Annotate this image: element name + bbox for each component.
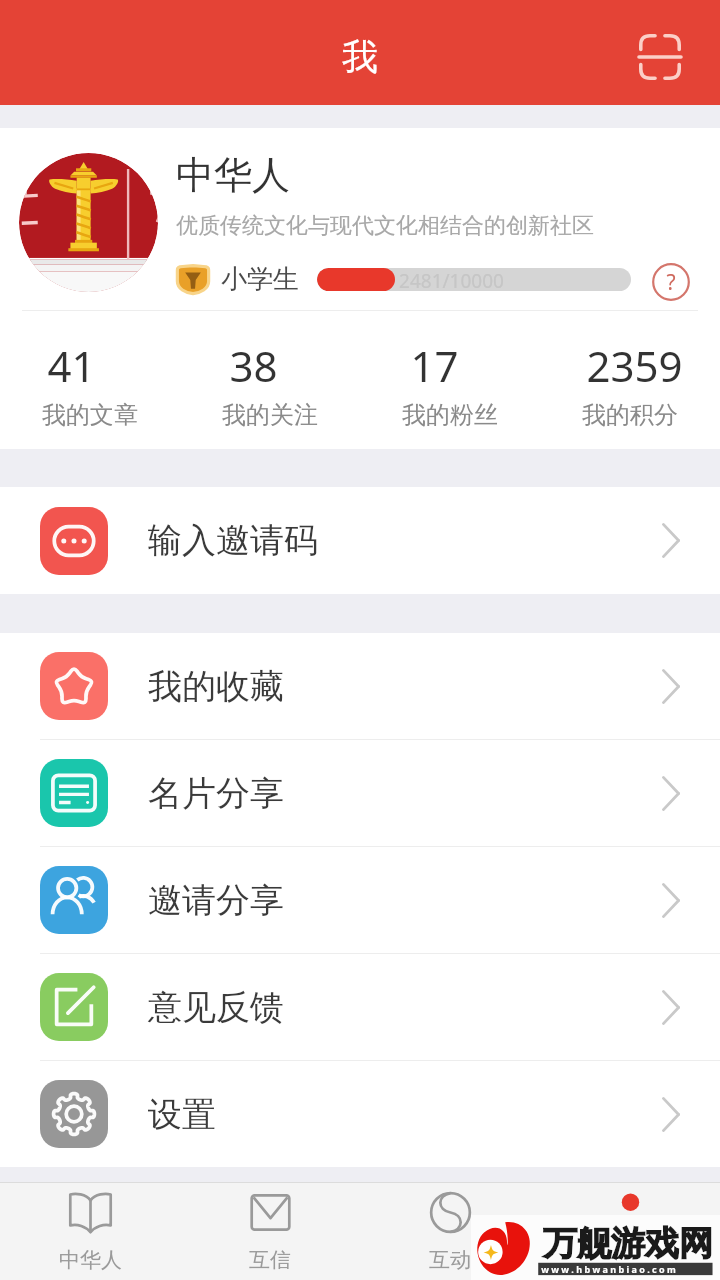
staticText: 设置	[148, 1093, 216, 1136]
staticText: 我的粉丝	[402, 400, 498, 430]
staticText: 我的积分	[582, 400, 678, 430]
staticText: 我的收藏	[148, 665, 284, 708]
staticText: 名片分享	[148, 772, 284, 815]
button[interactable]: 意见反馈	[0, 954, 720, 1060]
staticText: w w w . h b w a n b i a o . c o m	[541, 1263, 676, 1275]
staticText: 输入邀请码	[148, 519, 318, 562]
staticText: 我的文章	[42, 400, 138, 430]
button[interactable]: 输入邀请码	[0, 487, 720, 594]
staticText: 中华人	[59, 1247, 122, 1273]
staticText: 2359	[586, 337, 683, 394]
staticText: 小学生	[221, 263, 299, 296]
button[interactable]: 中华人	[0, 1183, 180, 1280]
staticText: 中华人	[176, 151, 290, 199]
button[interactable]: 邀请分享	[0, 847, 720, 953]
staticText: 邀请分享	[148, 879, 284, 922]
staticText: 互动	[429, 1247, 471, 1273]
staticText: 38	[229, 337, 278, 394]
staticText: 41	[47, 337, 96, 394]
staticText: 2481/10000	[399, 268, 504, 291]
staticText: 万舰游戏网	[543, 1222, 713, 1265]
staticText: 我	[620, 1247, 641, 1273]
button[interactable]: 名片分享	[0, 740, 720, 846]
button[interactable]: 我的收藏	[0, 633, 720, 739]
staticText: 意见反馈	[148, 986, 284, 1029]
button[interactable]: 2359	[540, 311, 720, 449]
button[interactable]: 41	[0, 311, 180, 449]
staticText: 互信	[249, 1247, 291, 1273]
staticText: ?	[666, 268, 676, 297]
staticText: 我	[342, 34, 378, 79]
button[interactable]: 38	[180, 311, 360, 449]
button[interactable]: 互信	[180, 1183, 360, 1280]
staticText: 我的关注	[222, 400, 318, 430]
staticText: 17	[410, 337, 459, 394]
button[interactable]: 我	[540, 1183, 720, 1280]
button[interactable]: Level help	[650, 261, 692, 303]
button[interactable]: 17	[360, 311, 540, 449]
button[interactable]: 互动	[360, 1183, 540, 1280]
button[interactable]: 设置	[0, 1061, 720, 1167]
button[interactable]: Scan QR code	[630, 27, 690, 87]
staticText: 优质传统文化与现代文化相结合的创新社区	[176, 212, 594, 240]
button[interactable]: Profile avatar	[19, 153, 158, 292]
